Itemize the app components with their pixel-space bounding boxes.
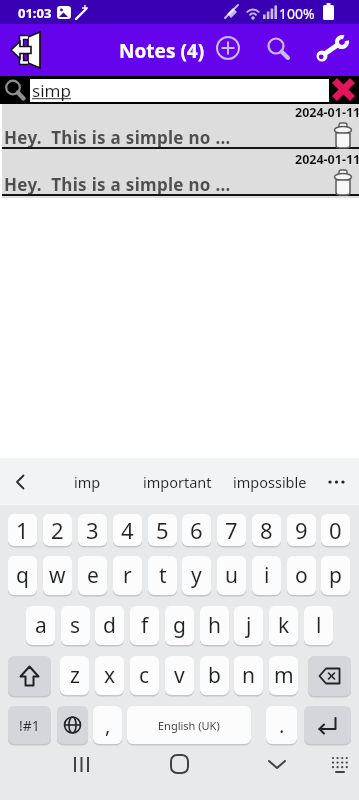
button[interactable]: 3 (78, 514, 107, 546)
staticText: !#1 (19, 716, 40, 735)
button[interactable] (68, 752, 96, 780)
button[interactable]: !#1 (8, 706, 51, 744)
button[interactable]: English (UK) (127, 706, 251, 744)
button[interactable]: h (200, 606, 229, 645)
staticText: 7 (225, 515, 238, 545)
button[interactable] (308, 30, 350, 66)
staticText: k (278, 611, 290, 640)
staticText: impossible (233, 472, 307, 492)
button[interactable] (262, 32, 294, 64)
staticText: u (225, 561, 238, 590)
button[interactable]: d (95, 606, 124, 645)
staticText: 8 (260, 515, 273, 545)
button[interactable]: i (252, 556, 281, 595)
staticText: i (264, 561, 270, 590)
button[interactable] (332, 169, 354, 195)
staticText: e (87, 561, 99, 590)
button[interactable]: m (269, 656, 298, 695)
button[interactable] (166, 750, 194, 780)
button[interactable]: a (26, 606, 55, 645)
staticText: s (70, 611, 81, 640)
button[interactable]: f (130, 606, 159, 645)
button[interactable]: 2 (43, 514, 72, 546)
staticText: b (208, 661, 221, 690)
button[interactable]: e (78, 556, 107, 595)
staticText: h (208, 611, 221, 640)
button[interactable]: c (130, 656, 159, 695)
button[interactable]: q (8, 556, 37, 595)
staticText: r (123, 561, 132, 590)
button[interactable]: 2024-01-11 (2, 104, 359, 151)
button[interactable]: 2024-01-11 (2, 151, 359, 198)
button[interactable] (57, 706, 88, 744)
staticText: g (173, 611, 186, 640)
button[interactable] (304, 706, 351, 744)
staticText: . (279, 712, 285, 739)
staticText: , (105, 712, 111, 739)
button[interactable]: 7 (217, 514, 246, 546)
button[interactable]: o (287, 556, 316, 595)
button[interactable] (322, 468, 352, 496)
button[interactable]: r (113, 556, 142, 595)
staticText: imp (74, 472, 101, 492)
staticText: o (295, 561, 308, 590)
staticText: 2024-01-11 (295, 104, 359, 121)
staticText: y (191, 561, 202, 590)
button[interactable] (328, 752, 356, 780)
button[interactable]: 4 (113, 514, 142, 546)
button[interactable] (212, 32, 246, 66)
staticText: v (174, 661, 185, 690)
button[interactable]: u (217, 556, 246, 595)
button[interactable]: z (60, 656, 89, 695)
button[interactable]: 8 (252, 514, 281, 546)
staticText: 6 (190, 515, 203, 545)
button[interactable] (8, 30, 42, 68)
staticText: t (159, 561, 167, 590)
button[interactable]: p (321, 556, 350, 595)
staticText: Notes (4) (119, 38, 205, 64)
button[interactable]: v (165, 656, 194, 695)
button[interactable]: g (165, 606, 194, 645)
button[interactable]: b (200, 656, 229, 695)
button[interactable]: x (95, 656, 124, 695)
button[interactable]: l (304, 606, 333, 645)
button[interactable]: s (61, 606, 90, 645)
button[interactable] (332, 122, 354, 148)
button[interactable]: j (234, 606, 263, 645)
staticText: 5 (156, 515, 169, 545)
button[interactable]: 0 (321, 514, 350, 546)
button[interactable]: n (234, 656, 263, 695)
button[interactable]: impossible (226, 458, 314, 505)
button[interactable]: t (148, 556, 177, 595)
button[interactable]: simp (30, 79, 329, 102)
button[interactable] (308, 656, 351, 696)
staticText: 0 (329, 515, 342, 545)
button[interactable]: y (182, 556, 211, 595)
staticText: 4 (121, 515, 134, 545)
button[interactable] (6, 468, 34, 496)
button[interactable]: important (134, 458, 220, 505)
button[interactable]: k (269, 606, 298, 645)
button[interactable]: 9 (287, 514, 316, 546)
staticText: 2024-01-11 (295, 151, 359, 168)
staticText: p (329, 561, 342, 590)
button[interactable]: 6 (182, 514, 211, 546)
button[interactable]: . (266, 706, 297, 744)
button[interactable]: 5 (148, 514, 177, 546)
staticText: c (139, 661, 150, 690)
staticText: 3 (86, 515, 99, 545)
button[interactable]: imp (46, 458, 128, 505)
staticText: 1 (16, 515, 29, 545)
button[interactable]: , (93, 706, 122, 744)
button[interactable] (8, 656, 51, 696)
button[interactable] (331, 78, 357, 102)
staticText: 2 (51, 515, 64, 545)
staticText: m (274, 661, 294, 690)
staticText: Hey. This is a simple no ... (4, 173, 231, 196)
button[interactable]: 1 (8, 514, 37, 546)
button[interactable]: w (43, 556, 72, 595)
staticText: Hey. This is a simple no ... (4, 126, 231, 149)
staticText: 01:03 (18, 4, 52, 22)
staticText: 9 (295, 515, 308, 545)
button[interactable] (263, 752, 291, 778)
